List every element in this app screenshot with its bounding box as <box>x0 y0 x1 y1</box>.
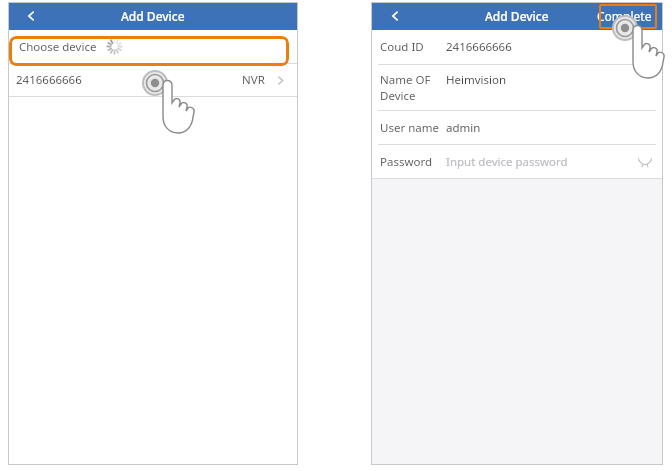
staticText: 2416666666 <box>446 39 512 55</box>
button[interactable]: Back <box>8 2 54 30</box>
button[interactable]: Coud ID <box>371 30 663 64</box>
staticText: User name <box>380 120 439 136</box>
staticText: Name OF Device <box>380 72 431 103</box>
button[interactable]: Name OF Device <box>371 65 663 110</box>
button[interactable]: Choose device <box>8 30 298 63</box>
staticText: 2416666666 <box>16 72 82 88</box>
staticText: Choose device <box>19 39 97 55</box>
staticText: Heimvision <box>446 72 507 88</box>
button[interactable]: Back <box>371 2 418 30</box>
button[interactable]: 2416666666 <box>8 64 298 96</box>
button[interactable]: Password <box>371 145 663 178</box>
button[interactable]: User name <box>371 111 663 144</box>
staticText: Add Device <box>121 8 185 24</box>
staticText: Add Device <box>485 8 549 24</box>
staticText: Password <box>380 154 433 170</box>
staticText: Coud ID <box>380 39 424 55</box>
staticText: Complete <box>597 8 652 24</box>
button[interactable]: Show password <box>636 153 654 171</box>
staticText: admin <box>446 120 481 136</box>
button[interactable]: Complete <box>597 8 652 24</box>
staticText: NVR <box>242 72 265 88</box>
staticText: Input device password <box>446 154 568 170</box>
